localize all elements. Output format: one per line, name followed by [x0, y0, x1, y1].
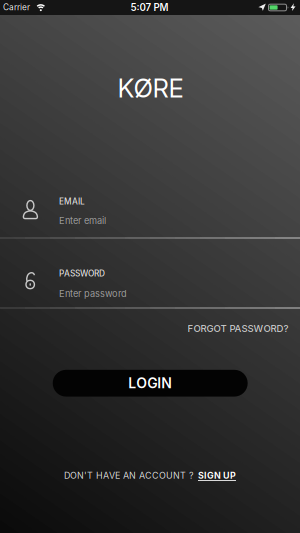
staticText: Enter password: [59, 288, 127, 299]
staticText: DON'T HAVE AN ACCOUNT ?: [64, 470, 194, 481]
staticText: KØRE: [117, 73, 183, 104]
staticText: EMAIL: [59, 197, 85, 207]
button[interactable]: LOGIN: [53, 370, 248, 397]
button[interactable]: SIGN UP: [198, 470, 236, 481]
button[interactable]: FORGOT PASSWORD?: [187, 323, 288, 334]
staticText: Enter email: [59, 215, 106, 226]
staticText: LOGIN: [128, 375, 172, 392]
staticText: 5:07 PM: [130, 1, 168, 13]
staticText: Carrier: [3, 2, 30, 12]
staticText: FORGOT PASSWORD?: [187, 323, 288, 334]
staticText: PASSWORD: [59, 269, 105, 279]
staticText: SIGN UP: [198, 470, 236, 481]
